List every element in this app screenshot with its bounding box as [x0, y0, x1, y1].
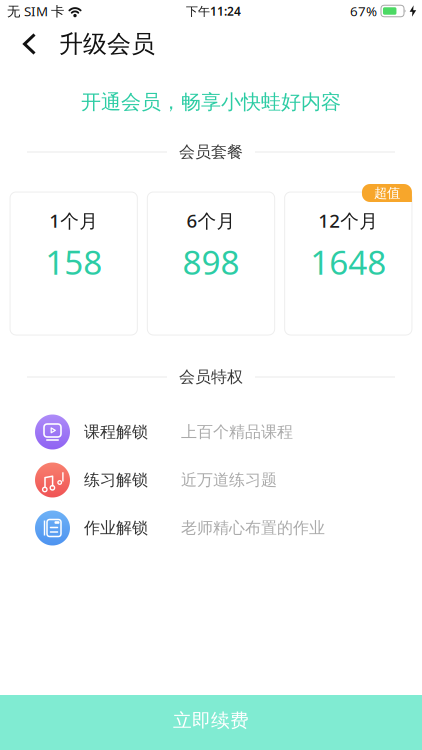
staticText: 练习解锁 [84, 470, 148, 490]
staticText: 12个月 [318, 208, 378, 233]
staticText: 会员特权 [179, 367, 243, 387]
staticText: 1648 [310, 240, 386, 284]
staticText: 立即续费 [173, 709, 249, 732]
staticText: 1个月 [49, 208, 98, 233]
staticText: 超值 [374, 185, 400, 201]
staticText: 近万道练习题 [181, 470, 277, 490]
button[interactable]: 12个月 [285, 192, 412, 335]
staticText: 67% [350, 2, 377, 20]
button[interactable]: 返回 [0, 33, 47, 55]
staticText: 上百个精品课程 [181, 422, 293, 442]
staticText: 6个月 [186, 208, 235, 233]
button[interactable]: 6个月 [147, 192, 275, 335]
staticText: 无 SIM 卡 [7, 2, 64, 20]
staticText: 老师精心布置的作业 [181, 518, 325, 538]
staticText: 课程解锁 [84, 422, 148, 442]
staticText: 开通会员，畅享小快蛙好内容 [81, 90, 341, 114]
staticText: 158 [45, 240, 102, 284]
button[interactable]: 立即续费 [0, 695, 422, 750]
staticText: 下午11:24 [186, 3, 241, 19]
staticText: 升级会员 [59, 29, 155, 59]
staticText: 会员套餐 [179, 142, 243, 162]
button[interactable]: 1个月 [10, 192, 137, 335]
staticText: 898 [182, 240, 239, 284]
staticText: 作业解锁 [84, 518, 148, 538]
